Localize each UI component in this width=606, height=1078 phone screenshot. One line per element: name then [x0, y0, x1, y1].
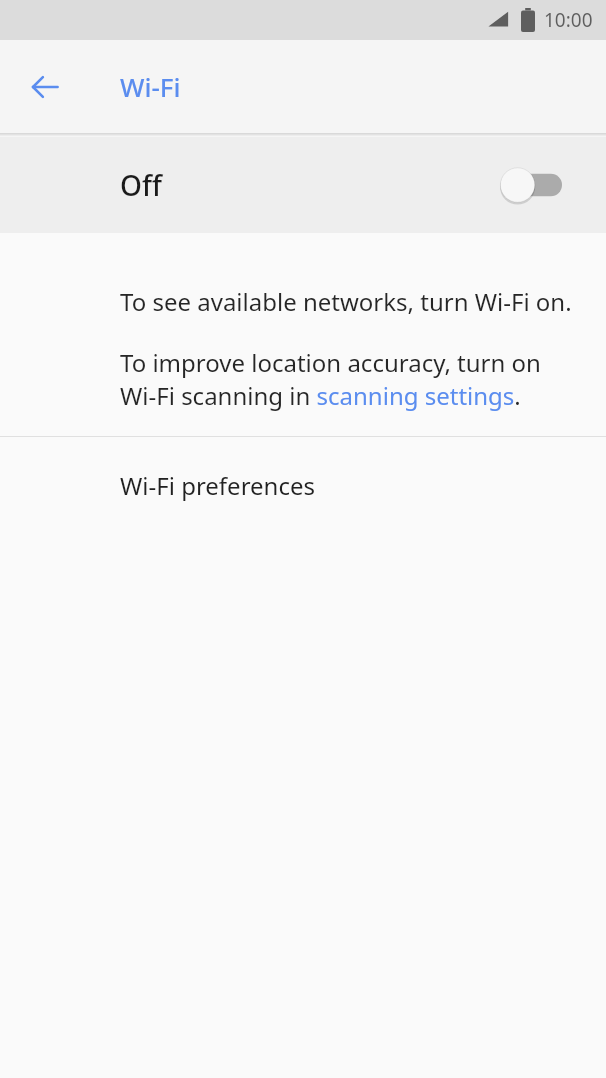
staticText: To improve location accuracy, turn on Wi… [120, 346, 578, 412]
button[interactable]: Back [17, 59, 73, 115]
staticText: 10:00 [544, 7, 593, 33]
button[interactable]: Wi-Fi preferences [0, 437, 606, 534]
staticText: Off [120, 166, 162, 204]
staticText: Wi-Fi [120, 69, 181, 104]
button[interactable]: Off [0, 137, 606, 233]
staticText: Wi-Fi preferences [120, 469, 315, 502]
staticText: To see available networks, turn Wi-Fi on… [120, 285, 572, 318]
